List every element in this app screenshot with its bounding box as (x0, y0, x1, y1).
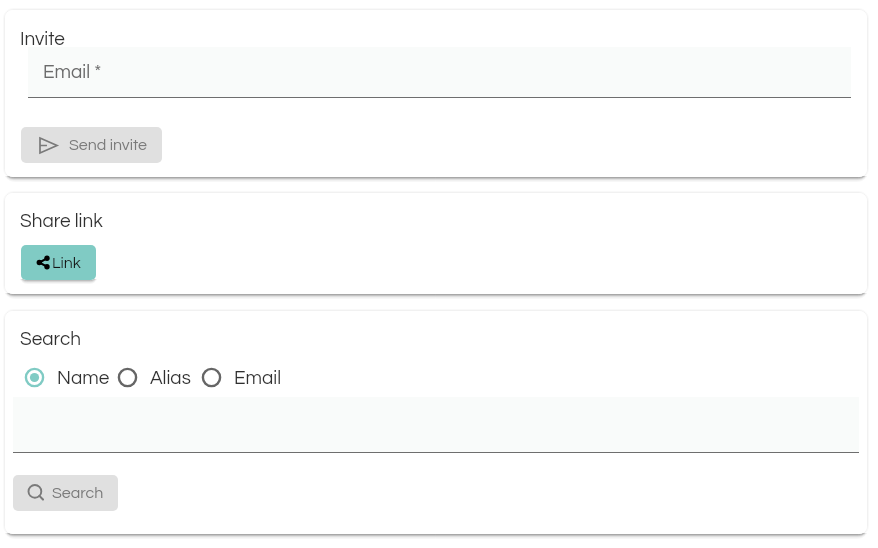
other: Share (36, 255, 51, 270)
button[interactable]: Share (21, 245, 96, 280)
button[interactable]: Search (13, 475, 118, 511)
staticText: Email * (43, 62, 102, 82)
button[interactable]: Email (199, 365, 282, 390)
staticText: Search (20, 329, 81, 349)
other: Send invite (39, 137, 58, 154)
staticText: Link (52, 255, 81, 271)
staticText: Alias (150, 368, 191, 388)
staticText: Send invite (69, 137, 147, 153)
staticText: Share link (20, 211, 103, 231)
button[interactable]: Name (22, 365, 110, 390)
button[interactable]: Alias (115, 365, 191, 390)
other: Search (28, 485, 44, 501)
staticText: Email (234, 368, 282, 388)
button[interactable]: Send invite (21, 127, 162, 163)
staticText: Name (57, 368, 110, 388)
staticText: Search (52, 485, 104, 501)
staticText: Invite (20, 29, 65, 49)
button[interactable]: Email * (28, 47, 851, 97)
